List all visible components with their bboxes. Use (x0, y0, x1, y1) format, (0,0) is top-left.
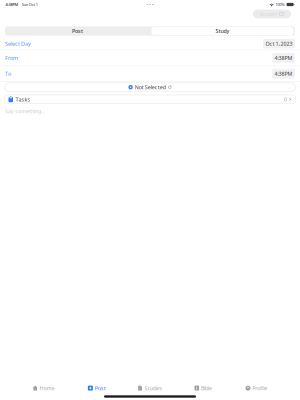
button[interactable]: Screen (253, 10, 291, 18)
button[interactable]: Post (5, 26, 150, 36)
staticText: 4:38PM (275, 70, 293, 77)
staticText: Sun Oct 1 (22, 2, 38, 7)
staticText: Post (95, 385, 106, 392)
staticText: Home (39, 385, 54, 392)
button[interactable]: Not Selected (4, 83, 295, 91)
staticText: 4:38PM (5, 2, 18, 7)
button[interactable]: Home (17, 385, 70, 392)
button[interactable]: From (0, 50, 300, 66)
staticText: Post (72, 27, 83, 35)
button[interactable]: Post (70, 385, 123, 392)
staticText: Screen (260, 10, 277, 18)
staticText: Tasks (15, 96, 30, 103)
button[interactable]: Select Day (0, 38, 300, 50)
staticText: Say something... (5, 108, 44, 115)
staticText: Studies (144, 385, 162, 392)
staticText: Oct 1, 2023 (266, 40, 293, 47)
button[interactable]: To (0, 66, 300, 82)
staticText: 4:38PM (275, 54, 293, 61)
staticText: Not Selected (135, 84, 166, 91)
button[interactable]: Study (150, 26, 295, 36)
button[interactable]: Bible (177, 385, 230, 392)
staticText: Select Day (5, 40, 31, 47)
button[interactable]: Profile (230, 385, 283, 392)
staticText: To (5, 70, 11, 77)
staticText: Study (215, 27, 229, 35)
staticText: 0 (284, 96, 287, 103)
staticText: 100% (275, 2, 284, 7)
staticText: From (5, 54, 18, 61)
staticText: Profile (252, 385, 267, 392)
staticText: Bible (201, 385, 212, 392)
button[interactable]: Studies (123, 385, 177, 392)
button[interactable]: Tasks (4, 95, 295, 104)
